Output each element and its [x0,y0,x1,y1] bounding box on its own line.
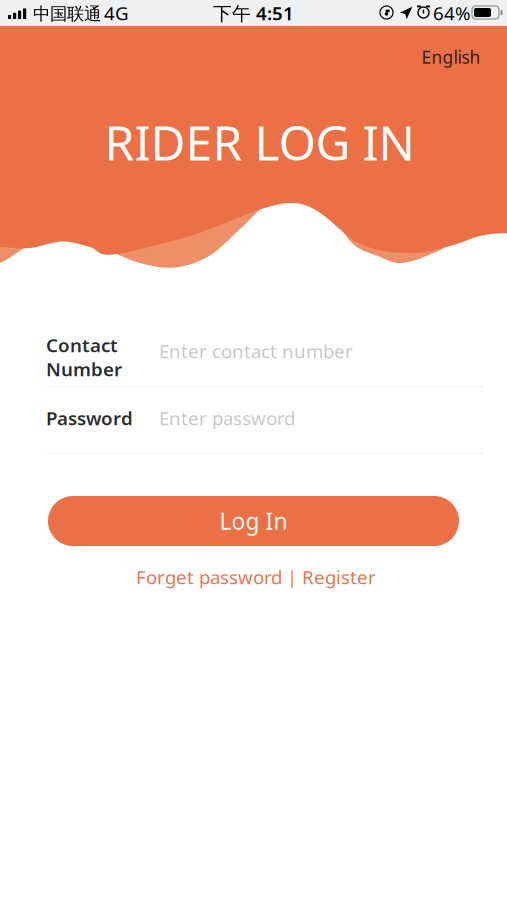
staticText: 64% [433,1,471,25]
staticText: Password [46,406,133,430]
staticText: 中国联通 [33,3,101,25]
staticText: English [421,45,480,68]
staticText: Forget password | Register [136,565,376,589]
staticText: 下午 4:51 [213,1,294,25]
button[interactable]: English [413,44,489,70]
staticText: RIDER LOG IN [104,110,414,174]
staticText: Contact [46,333,118,357]
staticText: Log In [219,506,287,536]
staticText: 4G [104,1,129,25]
button[interactable]: Log In [48,496,459,546]
staticText: Number [46,357,122,381]
staticText: Enter contact number [159,339,353,363]
staticText: Enter password [159,406,295,430]
button[interactable]: Forget password | Register [56,565,456,589]
